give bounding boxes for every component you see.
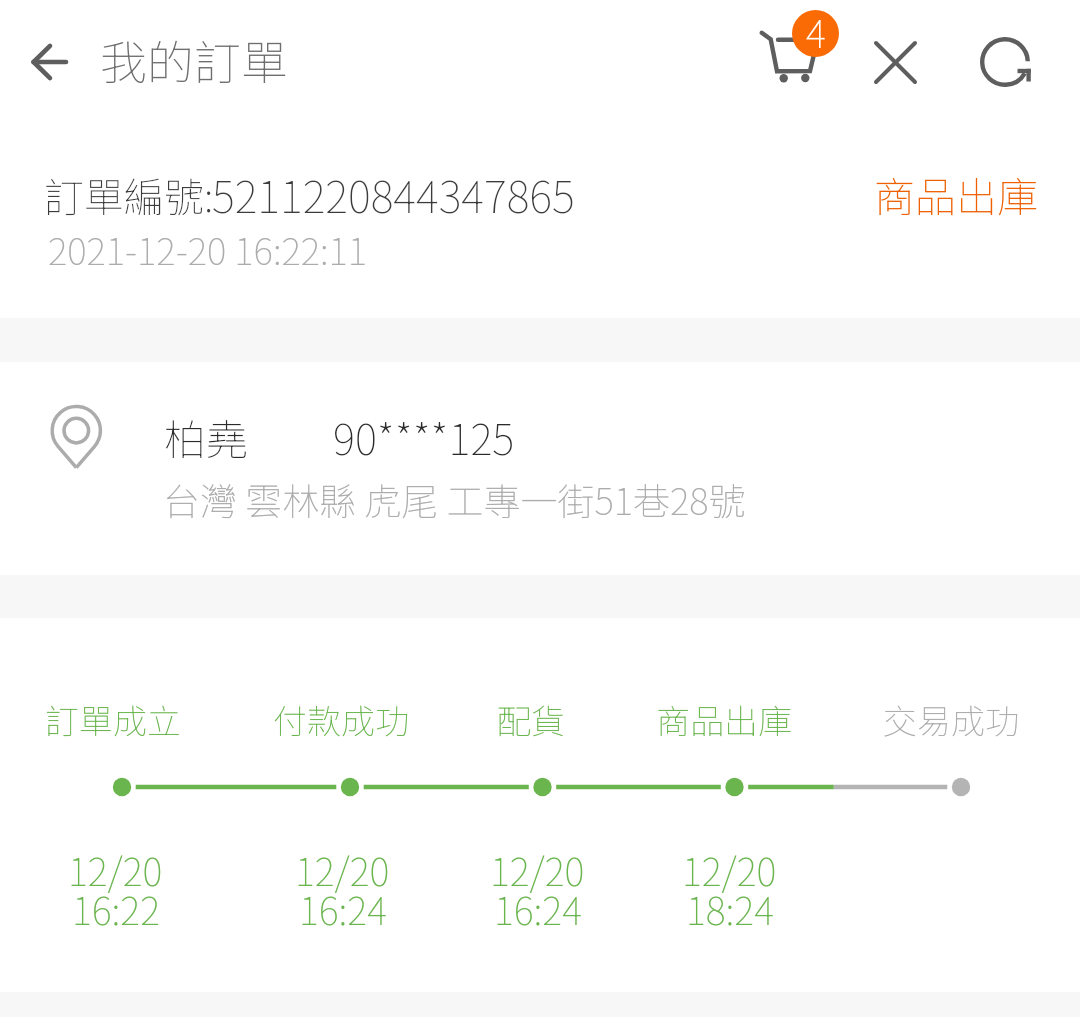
staticText: 配貨 xyxy=(497,695,565,744)
staticText: 16:24 xyxy=(494,881,582,936)
staticText: 台灣 雲林縣 虎尾 工專一街51巷28號 xyxy=(163,472,746,526)
staticText: 4 xyxy=(806,10,826,51)
staticText: 交易成功 xyxy=(883,695,1019,744)
staticText: 訂單編號: xyxy=(44,166,214,224)
staticText: 訂單成立 xyxy=(45,695,181,744)
button[interactable]: Close xyxy=(855,22,935,102)
staticText: 5211220844347865 xyxy=(212,163,575,226)
staticText: 12/20 xyxy=(490,842,585,897)
button[interactable]: Back xyxy=(8,18,92,106)
staticText: 18:24 xyxy=(686,881,774,936)
staticText: 我的訂單 xyxy=(100,25,288,93)
staticText: 付款成功 xyxy=(273,695,409,744)
staticText: 2021-12-20 16:22:11 xyxy=(48,222,368,276)
staticText: 柏堯 xyxy=(164,406,249,467)
button[interactable]: Shopping cart xyxy=(745,0,853,110)
staticText: 商品出庫 xyxy=(656,695,792,744)
button[interactable]: Refresh xyxy=(965,22,1045,102)
staticText: 90****125 xyxy=(333,406,515,467)
staticText: 16:24 xyxy=(299,881,387,936)
staticText: 12/20 xyxy=(682,842,777,897)
staticText: 12/20 xyxy=(68,842,163,897)
staticText: 商品出庫 xyxy=(874,164,1038,223)
staticText: 12/20 xyxy=(295,842,390,897)
staticText: 16:22 xyxy=(72,881,160,936)
